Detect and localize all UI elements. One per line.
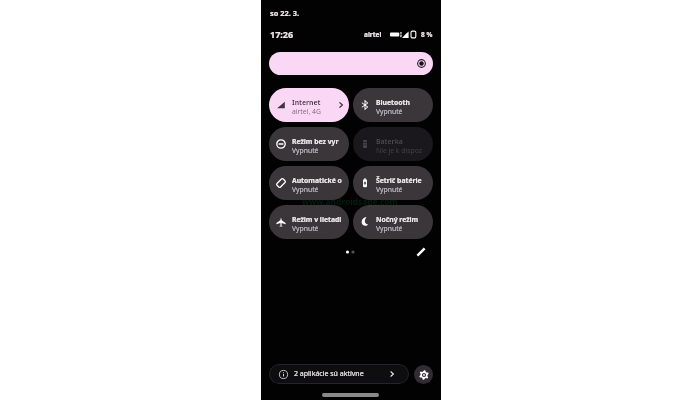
staticText: Vypnuté (292, 224, 319, 233)
staticText: Vypnuté (292, 146, 319, 155)
button[interactable]: Settings (414, 365, 433, 384)
staticText: Bluetooth (376, 98, 410, 107)
staticText: Vypnuté (376, 185, 403, 194)
staticText: Automatické o (292, 176, 342, 185)
staticText: Nie je k dispoz (376, 146, 422, 155)
button[interactable]: Režim v lietadl (269, 205, 349, 239)
button[interactable]: Šetrič batérie (353, 166, 433, 200)
button[interactable]: Internet (269, 88, 349, 122)
button[interactable]: Nočný režim (353, 205, 433, 239)
staticText: Režim bez vyr (292, 137, 339, 146)
staticText: Vypnuté (376, 224, 403, 233)
button[interactable]: Režim bez vyr (269, 127, 349, 161)
staticText: Vypnuté (292, 185, 319, 194)
staticText: Režim v lietadl (292, 215, 342, 224)
staticText: Nočný režim (376, 215, 419, 224)
button[interactable]: Brightness (269, 52, 433, 75)
staticText: Šetrič batérie (376, 176, 422, 185)
staticText: www.androidsage.com (302, 196, 398, 207)
button[interactable]: Automatické o (269, 166, 349, 200)
staticText: Internet (292, 98, 321, 107)
button[interactable]: Bluetooth (353, 88, 433, 122)
staticText: Vypnuté (376, 107, 403, 116)
staticText: airtel (364, 30, 382, 39)
button[interactable]: Edit tiles (413, 244, 429, 260)
staticText: so 22. 3. (270, 8, 300, 18)
staticText: 17:26 (270, 28, 294, 40)
staticText: airtel, 4G (292, 107, 321, 116)
staticText: Baterka (376, 137, 403, 146)
button[interactable]: 2 aplikácie sú aktívne (269, 364, 409, 384)
staticText: 2 aplikácie sú aktívne (294, 369, 364, 379)
button[interactable]: Baterka (353, 127, 433, 161)
staticText: 8 % (421, 30, 433, 39)
